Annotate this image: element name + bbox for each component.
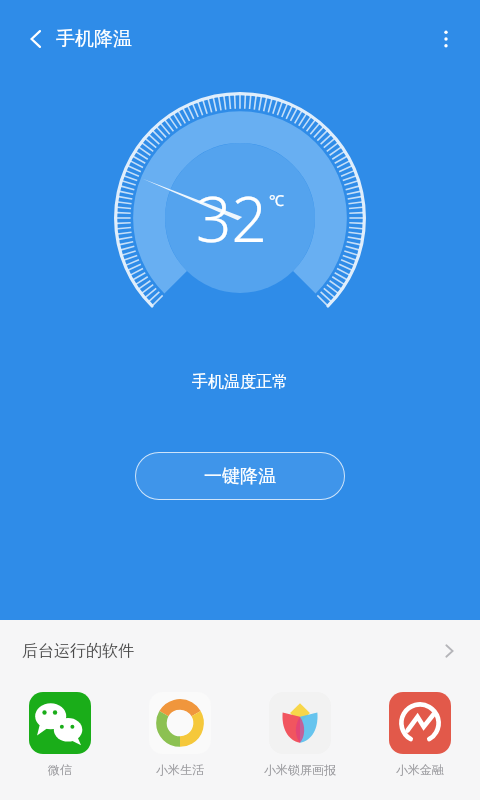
staticText: 小米金融 (396, 762, 444, 777)
staticText: 一键降温 (204, 465, 276, 488)
staticText: 小米生活 (156, 762, 204, 777)
staticText: 手机温度正常 (0, 372, 480, 392)
button[interactable]: Back (14, 17, 58, 61)
staticText: 后台运行的软件 (22, 641, 134, 661)
button[interactable]: More options (424, 17, 468, 61)
staticText: 小米锁屏画报 (264, 762, 336, 777)
button[interactable]: 一键降温 (135, 452, 345, 500)
button[interactable]: 微信 (0, 688, 120, 781)
button[interactable]: 小米生活 (120, 688, 240, 781)
button[interactable]: 小米金融 (360, 688, 480, 781)
staticText: 手机降温 (56, 27, 132, 51)
button[interactable]: 小米锁屏画报 (240, 688, 360, 781)
button[interactable]: 后台运行的软件 (0, 620, 480, 682)
staticText: 微信 (48, 762, 72, 777)
staticText: ℃ (269, 190, 284, 210)
staticText: 32 (196, 176, 267, 260)
